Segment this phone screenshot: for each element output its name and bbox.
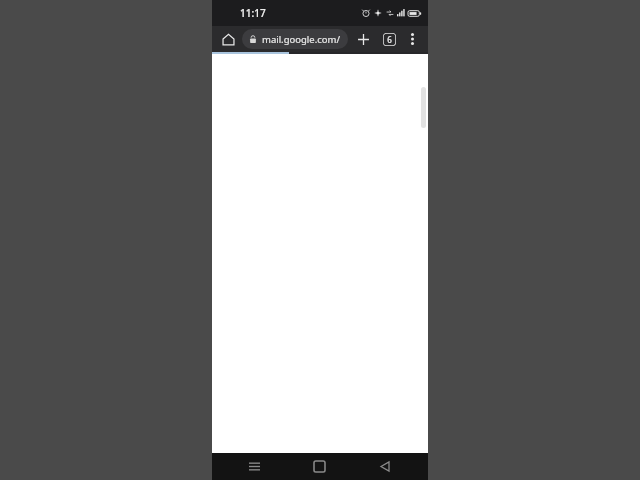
button[interactable]: Switch tabs, 6 open — [377, 27, 401, 51]
button[interactable]: mail.google.com/ — [242, 29, 348, 49]
staticText: 11:17 — [240, 6, 266, 20]
staticText: mail.google.com/ — [262, 33, 340, 46]
button[interactable]: Recent apps — [231, 453, 277, 480]
button[interactable]: Back — [362, 453, 408, 480]
button[interactable]: Home — [216, 27, 240, 51]
button[interactable]: Home — [296, 453, 342, 480]
staticText: 6 — [387, 34, 392, 45]
button[interactable]: New tab — [351, 27, 375, 51]
button[interactable]: More options — [400, 27, 424, 51]
